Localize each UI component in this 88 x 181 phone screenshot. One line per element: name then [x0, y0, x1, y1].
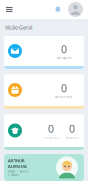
button[interactable]: Notifications: [52, 1, 64, 18]
button[interactable]: 0: [0, 114, 88, 150]
staticText: 0: [61, 42, 67, 56]
staticText: Idade 7 anos e 5 meses: [8, 170, 29, 177]
staticText: Presentes: [44, 136, 58, 139]
button[interactable]: 0: [0, 36, 88, 69]
button[interactable]: Menu: [0, 1, 18, 18]
staticText: Eventos Hoje: [55, 95, 73, 99]
staticText: 0: [69, 122, 75, 136]
staticText: Visão Geral: [5, 24, 32, 31]
staticText: ARTHUR ALMEIDA: [8, 158, 27, 169]
staticText: Ausentes: [65, 136, 78, 139]
button[interactable]: Profile: [64, 2, 88, 17]
button[interactable]: 0: [0, 74, 88, 109]
staticText: 0: [61, 81, 67, 95]
staticText: Mensagens: [56, 56, 71, 60]
staticText: 0: [48, 122, 54, 136]
button[interactable]: ARTHUR ALMEIDA: [0, 154, 88, 181]
